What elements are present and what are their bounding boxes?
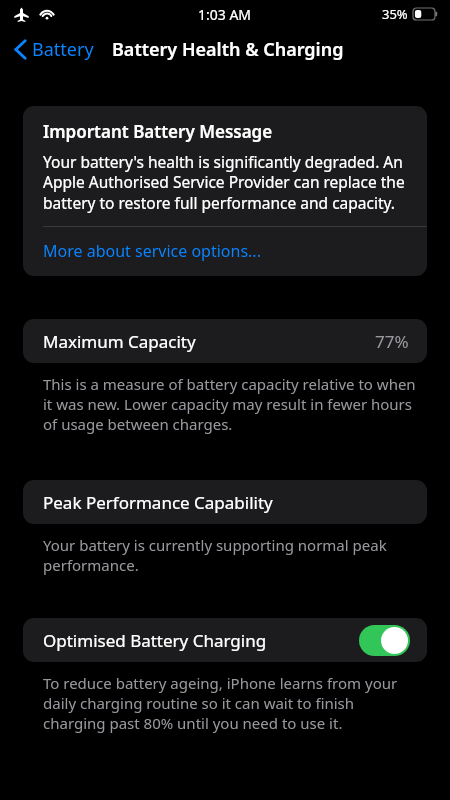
staticText: Battery <box>32 37 94 62</box>
staticText: 1:03 AM <box>198 5 252 24</box>
staticText: Your battery is currently supporting nor… <box>43 535 419 575</box>
staticText: 35% <box>382 5 408 23</box>
staticText: More about service options... <box>43 240 261 262</box>
staticText: Your battery's health is significantly d… <box>43 151 411 214</box>
button[interactable]: Battery <box>0 33 100 66</box>
button[interactable]: Maximum Capacity <box>23 319 427 363</box>
staticText: Peak Performance Capability <box>43 491 273 514</box>
staticText: Optimised Battery Charging <box>43 629 267 652</box>
button[interactable]: Optimised Battery Charging toggle <box>359 625 410 656</box>
staticText: Battery Health & Charging <box>112 37 344 62</box>
staticText: This is a measure of battery capacity re… <box>43 374 419 434</box>
button[interactable]: Peak Performance Capability <box>23 480 427 524</box>
staticText: Important Battery Message <box>43 120 273 143</box>
staticText: Maximum Capacity <box>43 330 196 353</box>
button[interactable]: Optimised Battery Charging <box>23 618 427 662</box>
staticText: To reduce battery ageing, iPhone learns … <box>43 673 419 733</box>
button[interactable]: More about service options... <box>23 227 427 276</box>
staticText: 77% <box>375 330 409 353</box>
